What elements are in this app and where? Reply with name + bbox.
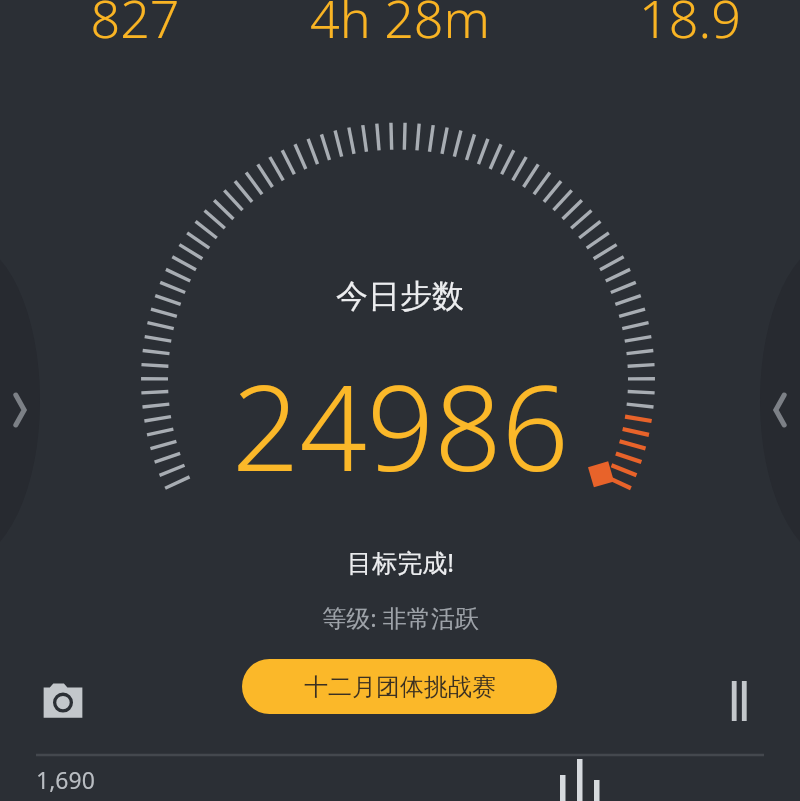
staticText: 今日步数 xyxy=(336,276,464,316)
staticText: 4h 28m xyxy=(310,0,490,42)
staticText: 18.9 xyxy=(639,0,741,42)
staticText: 1,690 xyxy=(36,764,95,795)
button[interactable]: Pause xyxy=(706,668,772,734)
button[interactable]: 十二月团体挑战赛 xyxy=(242,659,557,714)
staticText: 十二月团体挑战赛 xyxy=(304,672,496,702)
button[interactable]: Camera xyxy=(30,668,96,734)
staticText: 24986 xyxy=(232,345,569,475)
staticText: 等级: 非常活跃 xyxy=(322,601,479,634)
button[interactable]: Activity chart xyxy=(540,760,610,801)
staticText: 目标完成! xyxy=(347,545,454,579)
button[interactable]: 4h 28m xyxy=(280,0,520,42)
button[interactable]: 18.9 xyxy=(600,0,780,42)
button[interactable]: 827 xyxy=(60,0,210,42)
staticText: 827 xyxy=(90,0,180,42)
button[interactable]: Previous xyxy=(0,380,40,440)
button[interactable]: 1,690 xyxy=(36,758,166,801)
button[interactable]: Next xyxy=(760,380,800,440)
